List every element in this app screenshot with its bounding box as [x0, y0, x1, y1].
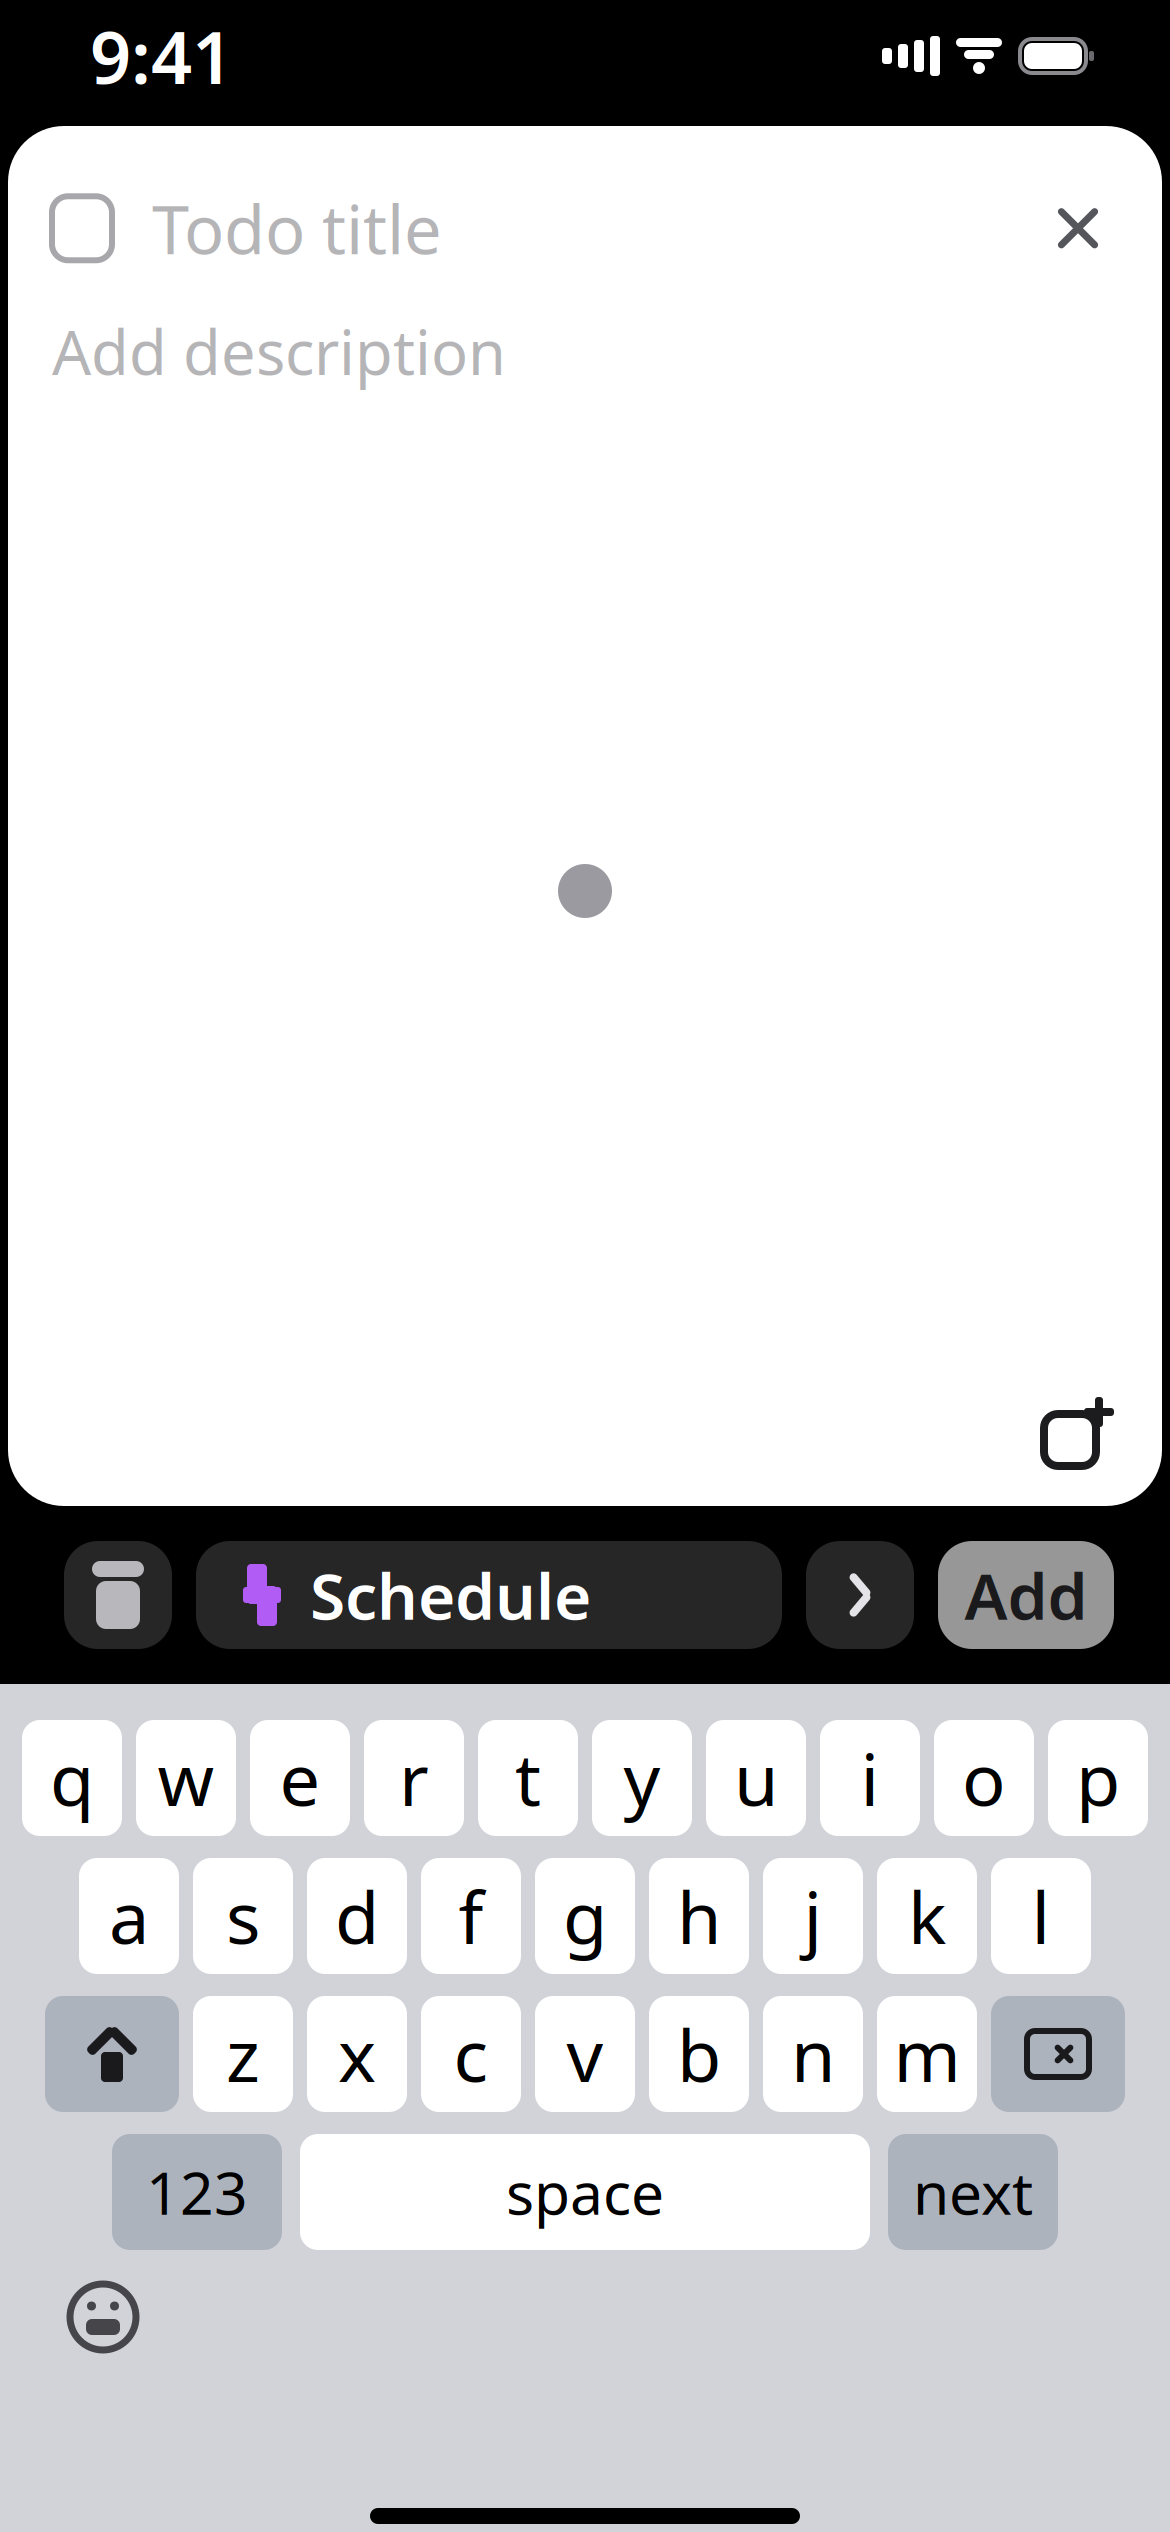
button[interactable]: space	[300, 2134, 870, 2250]
staticText: k	[908, 1868, 946, 1964]
staticText: 9:41	[90, 8, 233, 104]
button[interactable]: q	[22, 1720, 122, 1836]
button[interactable]: Mark complete	[52, 196, 112, 260]
staticText: 123	[146, 2153, 248, 2231]
button[interactable]: c	[421, 1996, 521, 2112]
button[interactable]: 123	[112, 2134, 282, 2250]
staticText: Add description	[52, 310, 506, 392]
staticText: j	[803, 1868, 822, 1964]
button[interactable]: Add subtask	[1030, 1390, 1120, 1480]
button[interactable]: next	[888, 2134, 1058, 2250]
staticText: g	[563, 1868, 607, 1964]
button[interactable]: a	[79, 1858, 179, 1974]
button[interactable]: t	[478, 1720, 578, 1836]
button[interactable]: Delete	[64, 1541, 172, 1649]
button[interactable]: m	[877, 1996, 977, 2112]
button[interactable]: s	[193, 1858, 293, 1974]
staticText: Todo title	[152, 184, 442, 272]
button[interactable]: Shift	[45, 1996, 179, 2112]
staticText: b	[677, 2006, 721, 2102]
button[interactable]: Add	[938, 1541, 1114, 1649]
button[interactable]: v	[535, 1996, 635, 2112]
staticText: Schedule	[310, 1552, 591, 1637]
staticText: c	[453, 2006, 488, 2102]
button[interactable]: x	[307, 1996, 407, 2112]
button[interactable]: d	[307, 1858, 407, 1974]
button[interactable]: h	[649, 1858, 749, 1974]
staticText: x	[338, 2006, 376, 2102]
staticText: i	[860, 1730, 879, 1826]
button[interactable]: i	[820, 1720, 920, 1836]
staticText: v	[566, 2006, 603, 2102]
staticText: q	[50, 1730, 94, 1826]
button[interactable]: Delete	[991, 1996, 1125, 2112]
staticText: m	[893, 2006, 960, 2102]
staticText: t	[515, 1730, 541, 1826]
staticText: a	[109, 1868, 149, 1964]
button[interactable]: u	[706, 1720, 806, 1836]
button[interactable]: f	[421, 1858, 521, 1974]
button[interactable]: p	[1048, 1720, 1148, 1836]
staticText: o	[962, 1730, 1006, 1826]
button[interactable]: More options	[806, 1541, 914, 1649]
staticText: s	[226, 1868, 260, 1964]
staticText: p	[1076, 1730, 1120, 1826]
button[interactable]: e	[250, 1720, 350, 1836]
staticText: e	[279, 1730, 320, 1826]
staticText: r	[399, 1730, 429, 1826]
staticText: f	[458, 1868, 483, 1964]
button[interactable]: Schedule	[196, 1541, 782, 1649]
staticText: n	[791, 2006, 835, 2102]
staticText: h	[677, 1868, 721, 1964]
button[interactable]: Emoji keyboard	[58, 2272, 148, 2362]
button[interactable]: b	[649, 1996, 749, 2112]
button[interactable]: l	[991, 1858, 1091, 1974]
button[interactable]: g	[535, 1858, 635, 1974]
button[interactable]: Close	[1038, 188, 1118, 268]
staticText: u	[734, 1730, 778, 1826]
button[interactable]: z	[193, 1996, 293, 2112]
button[interactable]: j	[763, 1858, 863, 1974]
button[interactable]: w	[136, 1720, 236, 1836]
staticText: d	[335, 1868, 379, 1964]
staticText: y	[623, 1730, 660, 1826]
button[interactable]: y	[592, 1720, 692, 1836]
staticText: w	[157, 1730, 214, 1826]
button[interactable]: n	[763, 1996, 863, 2112]
button[interactable]: k	[877, 1858, 977, 1974]
staticText: space	[506, 2153, 664, 2231]
staticText: Add	[964, 1552, 1087, 1637]
staticText: l	[1031, 1868, 1050, 1964]
staticText: z	[226, 2006, 260, 2102]
staticText: next	[913, 2153, 1033, 2231]
button[interactable]: o	[934, 1720, 1034, 1836]
button[interactable]: r	[364, 1720, 464, 1836]
